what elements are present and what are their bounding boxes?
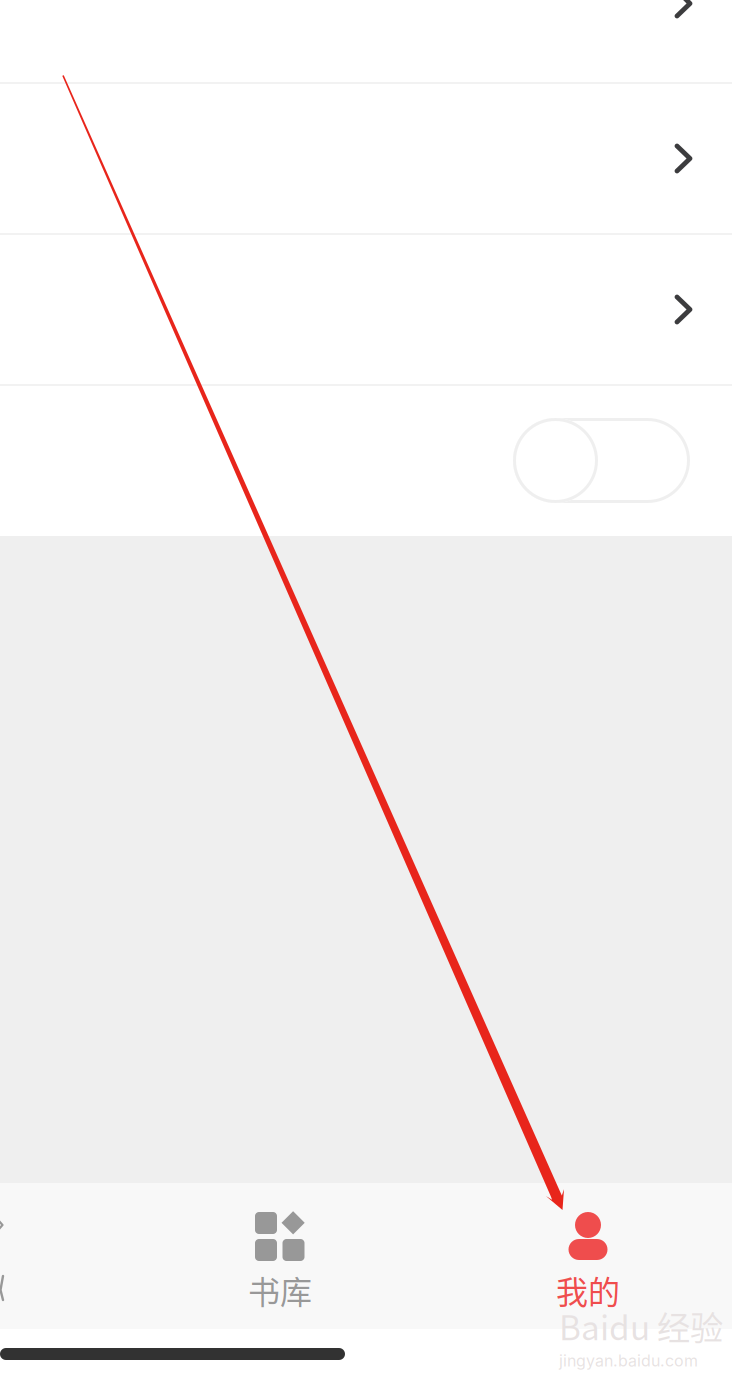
button[interactable]: Settings item xyxy=(0,1,732,82)
button[interactable]: Listen xyxy=(0,1183,5,1329)
staticText: jingyan.baidu.com xyxy=(559,1351,698,1370)
staticText: 书库 xyxy=(248,1267,312,1313)
staticText: 我的 xyxy=(556,1267,620,1313)
button[interactable]: 我的 xyxy=(512,1183,664,1329)
button[interactable]: Settings item xyxy=(0,235,732,384)
button[interactable]: Settings item xyxy=(0,84,732,233)
button[interactable]: 书库 xyxy=(204,1183,356,1329)
button[interactable]: Toggle setting xyxy=(0,386,732,535)
staticText: Baidu 经验 xyxy=(559,1302,723,1350)
